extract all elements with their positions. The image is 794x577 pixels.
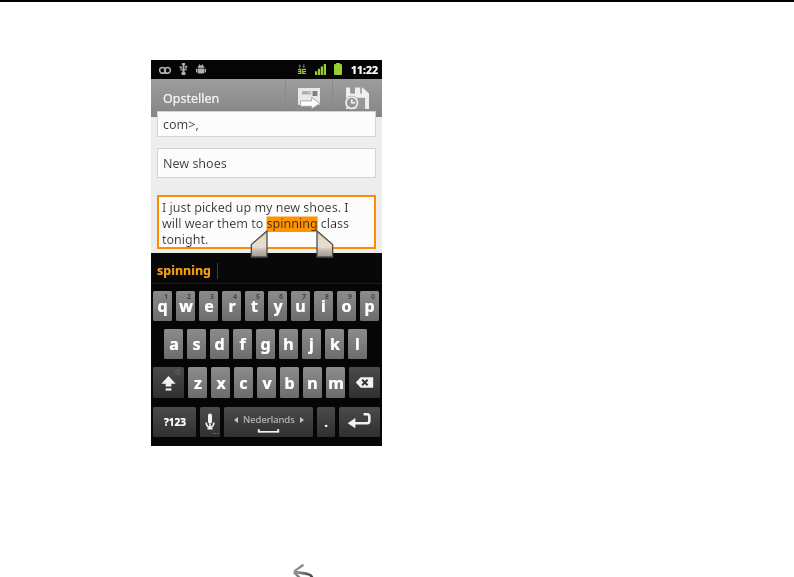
button[interactable]: o bbox=[337, 291, 356, 321]
staticText: 2 bbox=[187, 292, 192, 302]
staticText: d bbox=[214, 333, 225, 355]
button[interactable]: i bbox=[314, 291, 333, 321]
staticText: z bbox=[194, 372, 202, 394]
button[interactable]: p bbox=[360, 291, 379, 321]
staticText: Opstellen bbox=[163, 90, 220, 107]
staticText: . bbox=[324, 413, 328, 431]
staticText: i bbox=[321, 295, 326, 317]
button[interactable]: z bbox=[188, 367, 207, 398]
button[interactable]: c bbox=[234, 367, 253, 398]
staticText: u bbox=[295, 295, 306, 317]
staticText: p bbox=[364, 295, 375, 317]
button[interactable]: t bbox=[245, 291, 264, 321]
other: Selection end handle bbox=[317, 231, 334, 257]
button[interactable]: v bbox=[257, 367, 276, 398]
button[interactable]: w bbox=[176, 291, 195, 321]
staticText: g bbox=[260, 333, 271, 355]
staticText: a bbox=[169, 333, 179, 355]
staticText: 1 bbox=[164, 292, 169, 302]
button[interactable]: space bbox=[224, 407, 313, 437]
button[interactable]: k bbox=[325, 329, 344, 359]
staticText: k bbox=[330, 333, 340, 355]
staticText: r bbox=[228, 295, 236, 317]
staticText: ?123 bbox=[164, 415, 186, 429]
other: Selection start handle bbox=[250, 231, 267, 257]
staticText: com>, bbox=[163, 116, 199, 133]
button[interactable]: f bbox=[233, 329, 252, 359]
staticText: w bbox=[179, 295, 193, 317]
staticText: n bbox=[307, 372, 318, 394]
button[interactable]: j bbox=[302, 329, 321, 359]
staticText: 9 bbox=[348, 292, 353, 302]
staticText: spinning bbox=[157, 262, 211, 279]
staticText: s bbox=[192, 333, 201, 355]
staticText: c bbox=[239, 372, 248, 394]
button[interactable]: I just picked up my new shoes. I will we… bbox=[157, 195, 376, 249]
button[interactable]: e bbox=[199, 291, 218, 321]
button[interactable]: r bbox=[222, 291, 241, 321]
button[interactable]: Save draft bbox=[333, 79, 382, 117]
button[interactable]: g bbox=[256, 329, 275, 359]
staticText: 4 bbox=[233, 292, 238, 302]
button[interactable]: enter bbox=[339, 407, 380, 437]
button[interactable]: q bbox=[153, 291, 172, 321]
button[interactable]: h bbox=[279, 329, 298, 359]
button[interactable]: del bbox=[349, 367, 380, 398]
button[interactable]: shift bbox=[153, 367, 184, 398]
button[interactable]: New shoes bbox=[157, 148, 376, 178]
other: Undo bbox=[292, 562, 322, 577]
button[interactable]: . bbox=[317, 407, 335, 437]
button[interactable]: Opstellen bbox=[151, 79, 285, 117]
staticText: 7 bbox=[302, 292, 307, 302]
staticText: t bbox=[251, 295, 258, 317]
staticText: j bbox=[309, 333, 314, 355]
staticText: 6 bbox=[279, 292, 284, 302]
staticText: 11:22 bbox=[351, 63, 378, 77]
staticText: b bbox=[284, 372, 295, 394]
button[interactable]: x bbox=[211, 367, 230, 398]
button[interactable]: s bbox=[187, 329, 206, 359]
staticText: f bbox=[239, 333, 246, 355]
button[interactable]: Send bbox=[286, 79, 332, 117]
button[interactable]: y bbox=[268, 291, 287, 321]
button[interactable]: com>, bbox=[157, 111, 376, 137]
staticText: 3 bbox=[210, 292, 215, 302]
staticText: q bbox=[157, 295, 168, 317]
staticText: 5 bbox=[256, 292, 261, 302]
staticText: 8 bbox=[325, 292, 330, 302]
staticText: Nederlands bbox=[243, 413, 295, 426]
button[interactable]: mic bbox=[200, 407, 220, 437]
staticText: m bbox=[328, 372, 344, 394]
staticText: v bbox=[262, 372, 272, 394]
button[interactable]: l bbox=[348, 329, 367, 359]
button[interactable]: m bbox=[326, 367, 345, 398]
staticText: I just picked up my new shoes. I will we… bbox=[162, 199, 350, 248]
button[interactable]: a bbox=[164, 329, 183, 359]
button[interactable]: ?123 bbox=[153, 407, 196, 437]
button[interactable]: n bbox=[303, 367, 322, 398]
staticText: l bbox=[355, 333, 360, 355]
staticText: x bbox=[216, 372, 226, 394]
button[interactable]: spinning bbox=[156, 262, 212, 279]
staticText: o bbox=[341, 295, 352, 317]
button[interactable]: b bbox=[280, 367, 299, 398]
staticText: h bbox=[283, 333, 294, 355]
button[interactable]: u bbox=[291, 291, 310, 321]
button[interactable]: d bbox=[210, 329, 229, 359]
staticText: y bbox=[273, 295, 283, 317]
staticText: e bbox=[204, 295, 214, 317]
staticText: New shoes bbox=[163, 155, 227, 172]
staticText: 0 bbox=[371, 292, 376, 302]
